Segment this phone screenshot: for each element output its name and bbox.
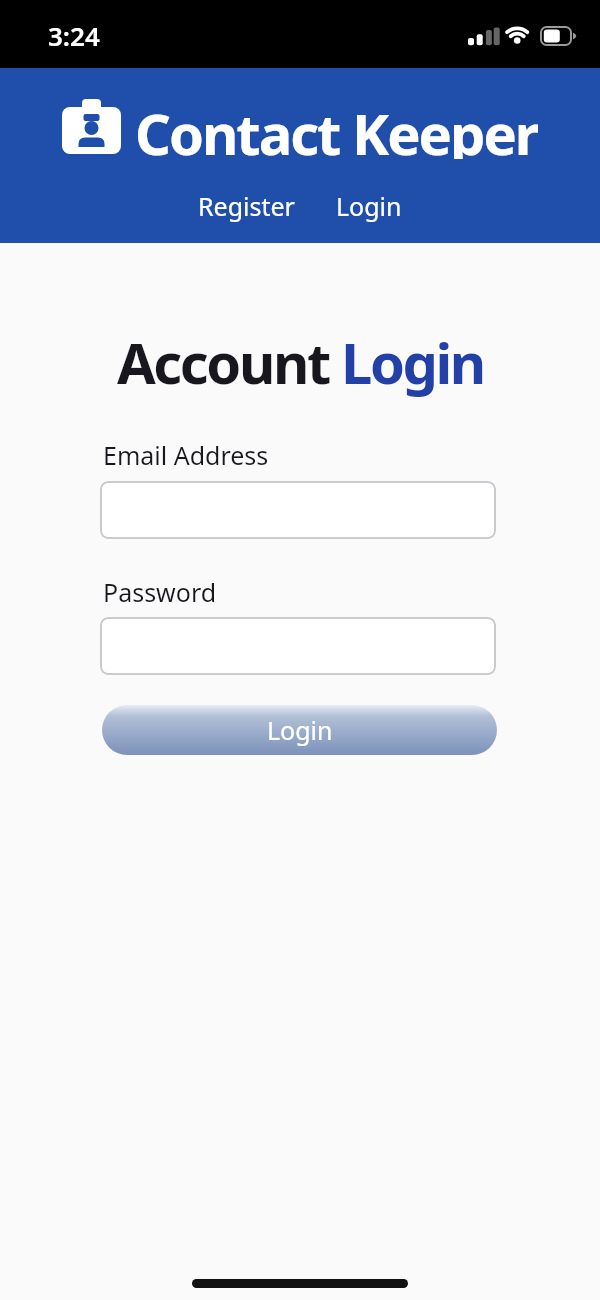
button[interactable] [100,481,496,539]
button[interactable]: Register [198,189,295,223]
staticText: 3:24 [48,18,100,53]
staticText: Register [198,189,295,223]
staticText: Contact Keeper [135,95,538,159]
staticText: Account Login [117,324,484,400]
staticText: Email Address [103,438,269,472]
button[interactable]: Login [102,705,497,755]
staticText: Login [336,189,402,223]
button[interactable] [100,617,496,675]
button[interactable]: Login [336,189,402,223]
staticText: Login [267,713,333,747]
staticText: Password [103,575,217,609]
